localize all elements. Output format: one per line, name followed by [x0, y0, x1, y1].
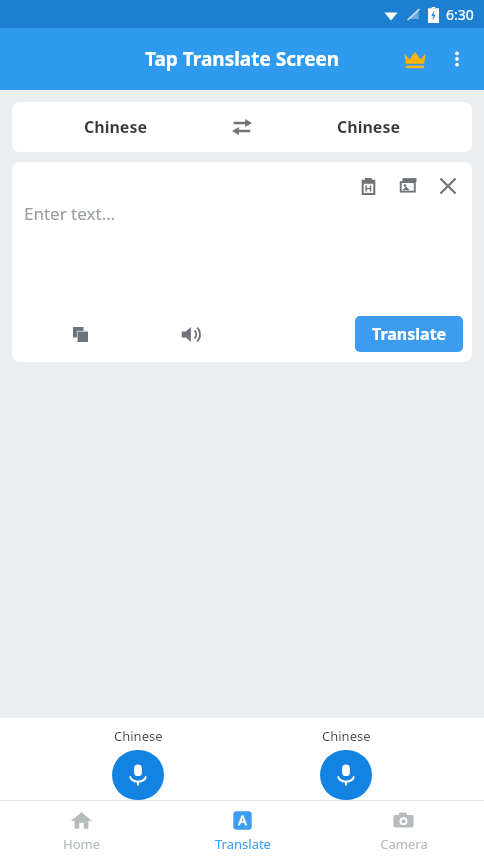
other: Speak Chinese — [320, 750, 372, 800]
button[interactable]: More options — [436, 38, 478, 80]
button[interactable]: Premium — [394, 38, 436, 80]
staticText: Chinese — [84, 116, 147, 138]
button[interactable]: Clear text — [428, 166, 468, 206]
button[interactable]: Translate — [162, 801, 323, 860]
button[interactable]: Speak — [170, 314, 210, 354]
staticText: Tap Translate Screen — [145, 46, 340, 72]
button[interactable]: Paste from clipboard — [348, 166, 388, 206]
button[interactable]: Translate — [355, 316, 463, 352]
button[interactable]: Chinese — [68, 718, 208, 800]
button[interactable]: Chinese — [276, 718, 416, 800]
other: Speak Chinese — [112, 750, 164, 800]
staticText: Camera — [380, 835, 428, 853]
button[interactable]: Swap languages — [219, 104, 265, 150]
button[interactable]: Copy — [60, 314, 100, 354]
staticText: Enter text… — [24, 202, 116, 225]
staticText: Translate — [215, 835, 271, 853]
button[interactable]: Home — [0, 801, 162, 860]
staticText: Translate — [372, 323, 447, 345]
button[interactable]: Camera — [323, 801, 484, 860]
button[interactable]: Translate image — [388, 166, 428, 206]
staticText: Chinese — [322, 727, 371, 745]
staticText: 6:30 — [446, 5, 474, 24]
staticText: Chinese — [337, 116, 400, 138]
staticText: Home — [63, 835, 100, 853]
staticText: Chinese — [114, 727, 163, 745]
button[interactable]: Chinese — [12, 102, 219, 152]
button[interactable]: Chinese — [265, 102, 472, 152]
